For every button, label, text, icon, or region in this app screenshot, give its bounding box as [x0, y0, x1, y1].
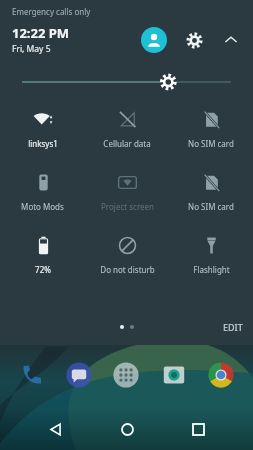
staticText: Cellular data [103, 138, 151, 149]
staticText: Moto Mods [21, 201, 64, 212]
staticText: No SIM card [188, 138, 234, 149]
button[interactable]: Moto Mods [0, 168, 85, 214]
button[interactable]: Project screen [85, 168, 169, 214]
button[interactable]: linksys1 [0, 105, 85, 151]
staticText: Emergency calls only [12, 6, 91, 17]
button[interactable]: Do not disturb [85, 231, 169, 277]
button[interactable]: Cellular data [85, 105, 169, 151]
button[interactable]: Flashlight [169, 231, 253, 277]
button[interactable]: EDIT [223, 321, 243, 333]
staticText: Fri, May 5 [12, 43, 51, 55]
button[interactable]: Recents [181, 412, 215, 446]
button[interactable]: No SIM card [169, 105, 253, 151]
staticText: Do not disturb [100, 264, 155, 275]
staticText: EDIT [223, 321, 243, 333]
button[interactable]: Brightness [22, 69, 231, 95]
staticText: 12:22 PM [12, 24, 70, 42]
button[interactable]: Back [38, 412, 72, 446]
button[interactable]: Collapse [219, 28, 243, 52]
button[interactable]: No SIM card [169, 168, 253, 214]
staticText: linksys1 [28, 138, 58, 149]
staticText: Flashlight [193, 264, 230, 275]
button[interactable]: 72% [0, 231, 85, 277]
staticText: No SIM card [188, 201, 234, 212]
button[interactable]: Home [110, 412, 144, 446]
button[interactable]: User [141, 27, 167, 53]
button[interactable]: Settings [181, 27, 207, 53]
staticText: Project screen [101, 201, 154, 212]
staticText: 72% [35, 264, 51, 275]
